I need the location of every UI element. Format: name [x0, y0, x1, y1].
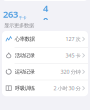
button[interactable]: 心率数据 [2, 31, 88, 47]
staticText: 2 小时 30 分 [53, 85, 80, 92]
staticText: 运动记录 [15, 68, 35, 75]
staticText: 心率数据 [15, 36, 35, 42]
staticText: 263 [3, 8, 18, 20]
button[interactable]: 活动记录 [2, 47, 88, 63]
staticText: 6405 [43, 0, 48, 39]
staticText: 活动记录 [15, 52, 35, 59]
staticText: 呼吸训练 [15, 85, 35, 91]
staticText: 320 分钟 [60, 68, 80, 75]
button[interactable]: 运动记录 [2, 64, 88, 80]
staticText: 127 次 [65, 35, 80, 43]
button[interactable]: 呼吸训练 [2, 80, 88, 96]
staticText: 显示更多数据 [4, 22, 34, 29]
staticText: 千卡 [19, 15, 27, 20]
staticText: 345 卡 [65, 52, 80, 59]
